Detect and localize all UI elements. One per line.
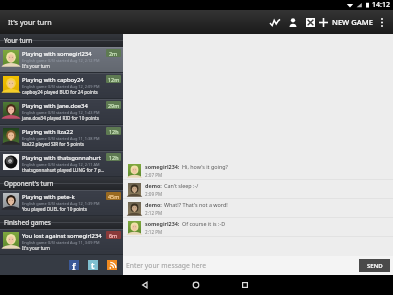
button[interactable]: Twitter [88, 260, 98, 270]
staticText: 45m [108, 193, 120, 200]
button[interactable]: Enter your message here [123, 256, 359, 275]
staticText: It's your turn [22, 63, 50, 69]
staticText: English game (US) started Aug 12, 2:09 P… [22, 84, 100, 89]
staticText: demo: [145, 182, 162, 189]
button[interactable]: Home [185, 275, 207, 295]
staticText: SEND [367, 262, 383, 270]
staticText: Playing with pete-k [22, 193, 75, 201]
staticText: liza22 played SIR for 5 points [22, 141, 84, 147]
button[interactable]: SEND [359, 259, 390, 272]
button[interactable]: Playing with liza22 [0, 125, 123, 151]
staticText: NEW GAME [332, 17, 373, 27]
button[interactable]: demo: [123, 199, 393, 218]
staticText: English game (US) started Aug 12, 2:11 A… [22, 162, 100, 167]
staticText: demo: [145, 201, 162, 208]
button[interactable]: demo: [123, 180, 393, 199]
button[interactable]: Back [134, 275, 156, 295]
staticText: jane.doe34 played RID for 10 points [22, 115, 99, 121]
staticText: 29m [108, 102, 120, 109]
staticText: You played DUEL for 10 points [22, 206, 87, 212]
staticText: Playing with thatsgonnahurt [22, 154, 101, 162]
button[interactable]: Playing with capboy24 [0, 73, 123, 99]
staticText: Playing with somegirl234 [22, 50, 92, 58]
button[interactable]: somegirl234: [123, 218, 393, 237]
staticText: English game (US) started Aug 11, 3:09 P… [22, 240, 100, 245]
button[interactable]: Playing with jane.doe34 [0, 99, 123, 125]
staticText: f [72, 260, 76, 270]
button[interactable]: More options [376, 10, 388, 34]
button[interactable]: somegirl234: [123, 161, 393, 180]
staticText: somegirl234: [145, 220, 180, 227]
staticText: t [91, 260, 95, 270]
button[interactable]: Profile [283, 10, 302, 34]
staticText: 14:12 [372, 0, 390, 10]
button[interactable]: Statistics [267, 10, 283, 34]
staticText: It's your turn [8, 17, 52, 27]
staticText: It's your turn [22, 245, 50, 251]
staticText: English game (US) started Aug 12, 2:12 P… [22, 58, 100, 63]
staticText: capboy24 played BUD for 24 points [22, 89, 98, 95]
staticText: Finished games [4, 218, 51, 227]
button[interactable]: Playing with pete-k [0, 190, 123, 216]
button[interactable]: You lost against somegirl234 [0, 229, 123, 255]
staticText: You lost against somegirl234 [22, 232, 102, 240]
staticText: Playing with capboy24 [22, 76, 84, 84]
staticText: somegirl234: [145, 163, 180, 170]
button[interactable]: Game board [302, 10, 318, 34]
staticText: 12h [109, 128, 119, 135]
staticText: English game (US) started Aug 11, 1:38 P… [22, 136, 100, 141]
button[interactable]: Recent apps [234, 275, 256, 295]
staticText: Enter your message here [126, 261, 207, 270]
button[interactable]: Playing with thatsgonnahurt [0, 151, 123, 177]
button[interactable]: RSS feed [107, 260, 117, 270]
staticText: 12h [109, 154, 119, 161]
staticText: English game (US) started Aug 12, 1:43 P… [22, 110, 100, 115]
staticText: Hi, how's it going? [182, 163, 228, 170]
button[interactable]: Facebook [69, 260, 79, 270]
staticText: 6m [109, 232, 118, 239]
staticText: Of course it is :-D [182, 220, 226, 227]
button[interactable]: NEW GAME [318, 10, 376, 34]
staticText: 2:12 PM [145, 229, 163, 235]
staticText: What!? That's not a word! [164, 201, 228, 208]
button[interactable]: Playing with somegirl234 [0, 47, 123, 73]
staticText: 2:12 PM [145, 210, 163, 216]
staticText: English game (US) started Aug 12, 1:39 P… [22, 201, 100, 206]
staticText: thatsgonnahurt played LUNG for 7 points [22, 167, 105, 173]
staticText: 2:07 PM [145, 172, 163, 178]
staticText: Opponent's turn [4, 179, 54, 188]
staticText: Playing with jane.doe34 [22, 102, 88, 110]
staticText: Playing with liza22 [22, 128, 74, 136]
staticText: Can't sleep :-/ [164, 182, 199, 189]
staticText: 12m [108, 76, 120, 83]
staticText: Your turn [4, 36, 33, 45]
staticText: 2:09 PM [145, 191, 163, 197]
staticText: 2m [109, 50, 118, 57]
